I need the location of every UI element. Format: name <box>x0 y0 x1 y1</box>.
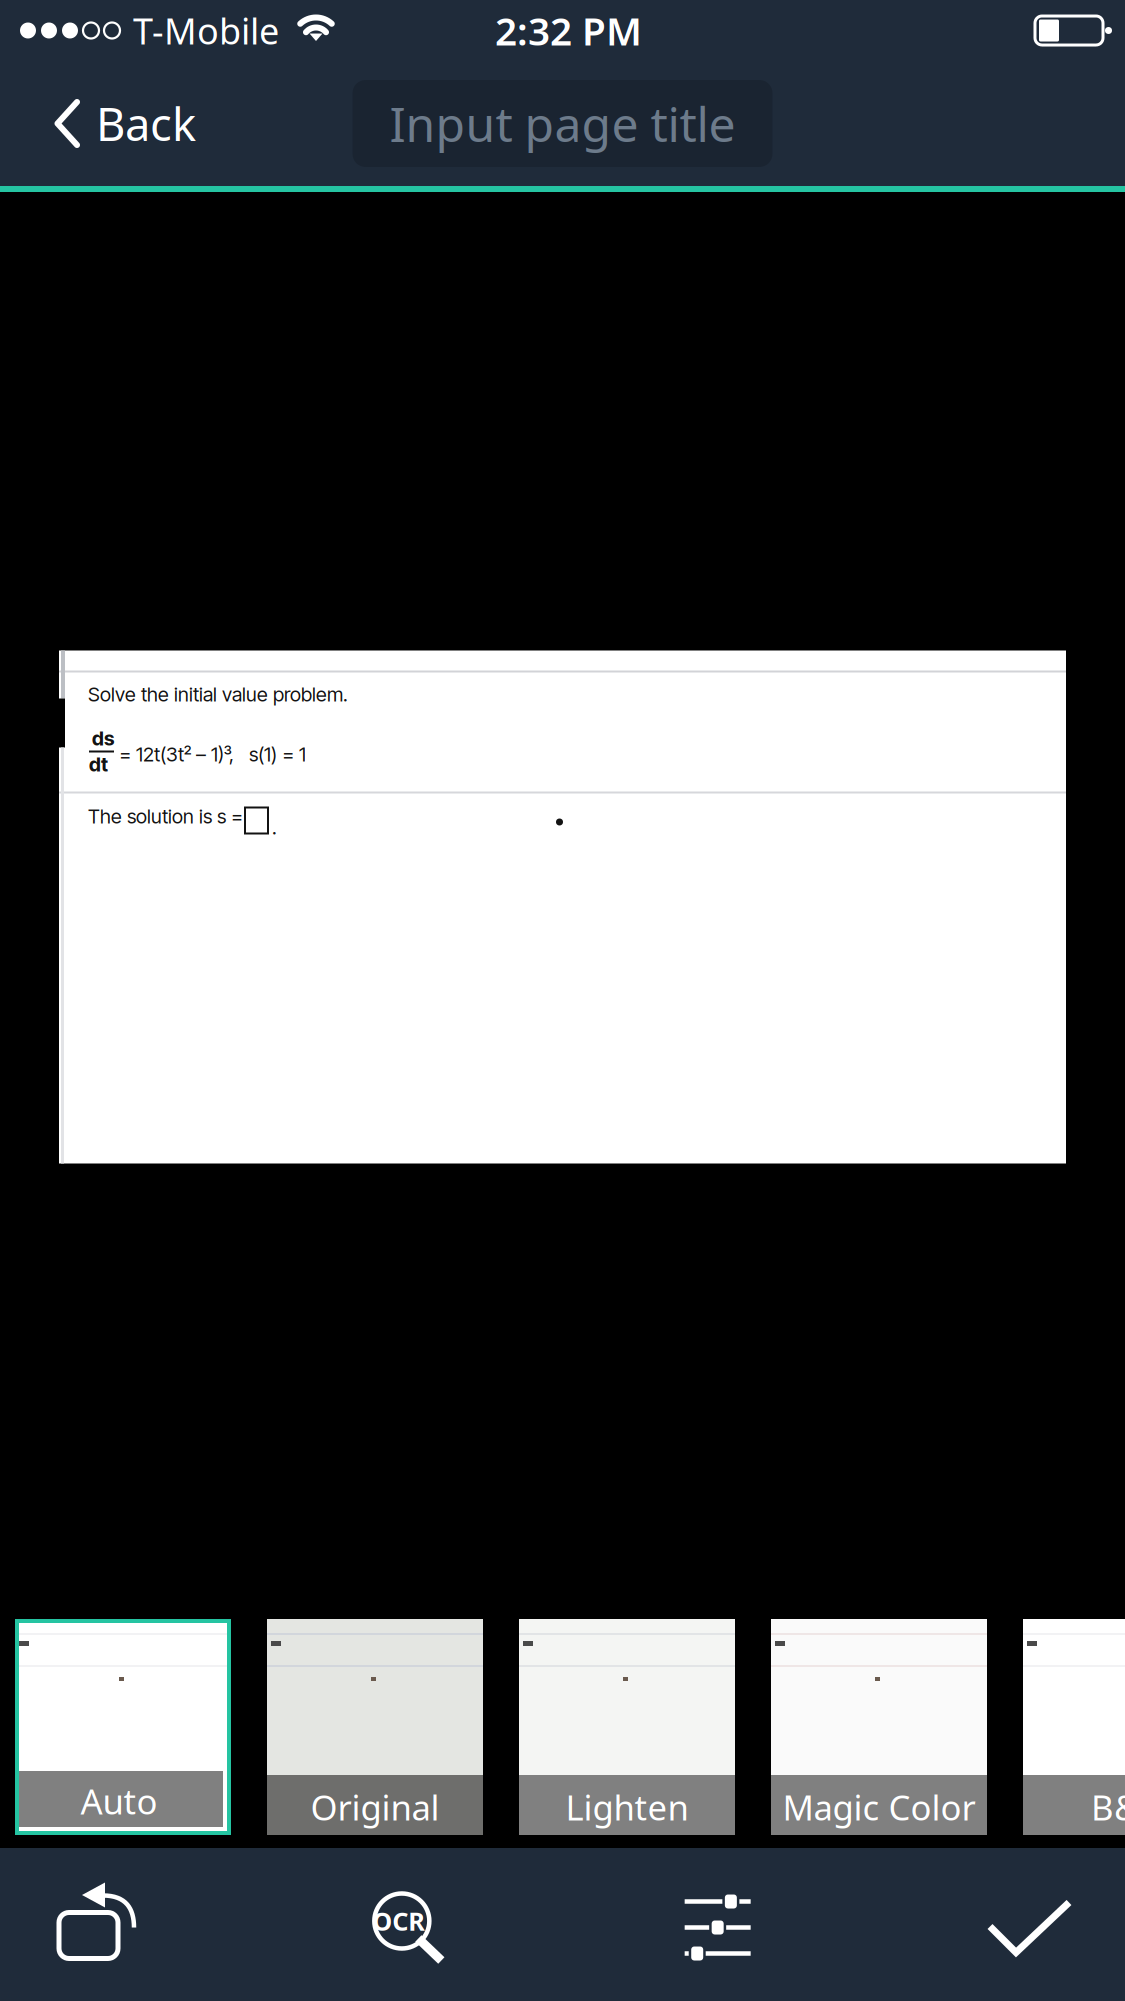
staticText: Magic Color <box>782 1784 975 1830</box>
button[interactable]: Auto <box>15 1619 231 1835</box>
staticText: = 12t(3t² – 1)³, s(1) = 1 <box>119 742 306 766</box>
staticText: dt <box>89 752 108 776</box>
button[interactable]: OCR <box>350 1848 467 2001</box>
staticText: Back <box>96 93 196 154</box>
staticText: The solution is s = <box>88 804 243 828</box>
button[interactable]: Done <box>964 1848 1089 2001</box>
button[interactable]: Magic Color <box>771 1619 987 1835</box>
staticText: ds <box>92 726 114 750</box>
staticText: B&W <box>1091 1784 1125 1830</box>
button[interactable]: Original <box>267 1619 483 1835</box>
staticText: OCR <box>372 1904 425 1938</box>
button[interactable]: Input page title <box>352 80 772 167</box>
button[interactable]: B&W <box>1023 1619 1125 1835</box>
button[interactable]: Back <box>0 73 222 174</box>
staticText: Original <box>310 1784 439 1830</box>
button[interactable]: Rotate <box>37 1848 155 2001</box>
staticText: Lighten <box>565 1784 688 1830</box>
button[interactable]: Lighten <box>519 1619 735 1835</box>
staticText: Solve the initial value problem. <box>88 682 348 706</box>
button[interactable]: Adjust <box>663 1848 769 2001</box>
staticText: T-Mobile <box>133 7 279 54</box>
staticText: Input page title <box>389 92 735 155</box>
staticText: 2:32 PM <box>495 5 642 56</box>
staticText: Auto <box>80 1778 157 1824</box>
staticText: . <box>272 815 277 839</box>
